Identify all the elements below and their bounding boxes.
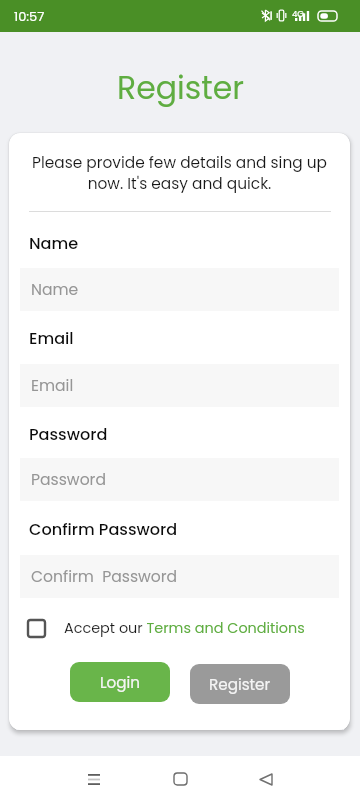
staticText: Password	[29, 423, 108, 446]
button[interactable]: Name	[20, 268, 339, 311]
staticText: Confirm Password	[31, 566, 178, 588]
staticText: Register	[117, 66, 244, 110]
button[interactable]: Accept terms checkbox	[25, 617, 47, 639]
staticText: 10:57	[14, 7, 45, 25]
staticText: Name	[31, 279, 79, 301]
staticText: Confirm Password	[29, 518, 178, 541]
button[interactable]: Recent apps	[72, 756, 116, 800]
button[interactable]: Home	[158, 756, 202, 800]
staticText: Email	[31, 375, 74, 397]
staticText: Email	[29, 327, 74, 350]
staticText: Please provide few details and sing up n…	[15, 152, 344, 194]
button[interactable]: Email	[20, 364, 339, 407]
staticText: Password	[31, 469, 106, 491]
staticText: Accept our Terms and Conditions	[64, 618, 305, 638]
button[interactable]: Password	[20, 458, 339, 501]
button[interactable]: Login	[70, 662, 170, 702]
button[interactable]: Back	[244, 756, 288, 800]
button[interactable]: Accept our Terms and Conditions	[64, 618, 305, 638]
button[interactable]: Confirm Password	[20, 555, 339, 598]
staticText: Register	[209, 674, 271, 695]
button[interactable]: Register	[190, 664, 290, 704]
staticText: Login	[100, 672, 141, 693]
staticText: 4G	[292, 8, 304, 20]
staticText: Name	[29, 232, 79, 255]
